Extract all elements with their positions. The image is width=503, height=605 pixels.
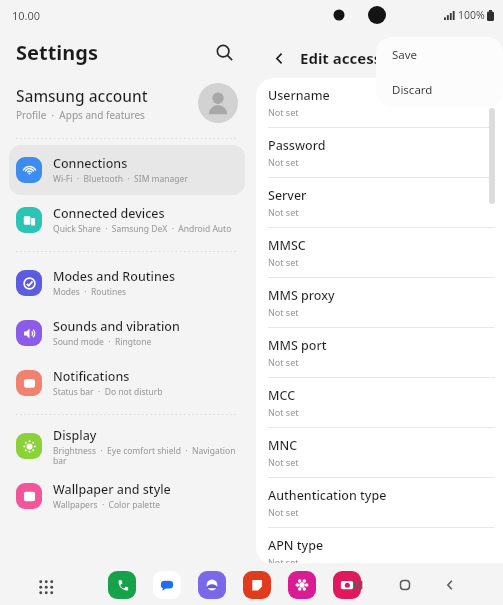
staticText: Display — [53, 427, 97, 444]
staticText: MMS port — [268, 337, 327, 354]
button[interactable]: Authentication type — [256, 478, 503, 527]
button[interactable]: Display — [9, 421, 245, 471]
staticText: Not set — [268, 456, 299, 468]
button[interactable]: Save — [376, 37, 503, 72]
staticText: Quick Share · Samsung DeX · Android Auto — [53, 223, 232, 235]
staticText: Not set — [268, 156, 299, 168]
staticText: Not set — [268, 256, 299, 268]
staticText: Wi-Fi · Bluetooth · SIM manager — [53, 173, 188, 185]
staticText: Not set — [268, 306, 299, 318]
staticText: Status bar · Do not disturb — [53, 386, 163, 398]
staticText: Wallpapers · Color palette — [53, 499, 161, 511]
button[interactable]: MESSAGES — [153, 571, 181, 599]
staticText: Not set — [268, 506, 299, 518]
staticText: Save — [392, 47, 418, 63]
button[interactable]: APN type — [256, 528, 503, 565]
button[interactable]: Wallpaper and style — [9, 471, 245, 521]
staticText: Modes and Routines — [53, 268, 175, 285]
staticText: Username — [268, 87, 330, 104]
staticText: Password — [268, 137, 326, 154]
button[interactable]: Discard — [376, 72, 503, 107]
button[interactable]: Back — [436, 571, 464, 599]
staticText: 10.00 — [12, 8, 41, 23]
staticText: Not set — [268, 356, 299, 368]
button[interactable]: Password — [256, 128, 503, 177]
staticText: Settings — [16, 39, 98, 66]
staticText: Not set — [268, 556, 299, 565]
button[interactable]: Connected devices — [9, 195, 245, 245]
button[interactable]: Server — [256, 178, 503, 227]
button[interactable]: Home — [391, 571, 419, 599]
staticText: Sounds and vibration — [53, 318, 180, 335]
button[interactable]: All apps — [32, 573, 60, 601]
button[interactable]: Sounds and vibration — [9, 308, 245, 358]
staticText: APN type — [268, 537, 324, 554]
button[interactable]: Modes and Routines — [9, 258, 245, 308]
staticText: Server — [268, 187, 307, 204]
button[interactable]: GALLERY — [288, 571, 316, 599]
staticText: Connected devices — [53, 205, 165, 222]
staticText: 100% — [458, 8, 485, 22]
button[interactable]: Notifications — [9, 358, 245, 408]
staticText: Notifications — [53, 368, 130, 385]
button[interactable]: BROWSER — [198, 571, 226, 599]
staticText: Discard — [392, 82, 433, 98]
staticText: Sound mode · Ringtone — [53, 336, 152, 348]
button[interactable]: Samsung account — [0, 74, 254, 132]
button[interactable]: NOTES — [243, 571, 271, 599]
button[interactable]: Search — [210, 38, 238, 66]
staticText: MMSC — [268, 237, 306, 254]
button[interactable]: Username — [256, 78, 503, 127]
button[interactable]: Connections — [9, 145, 245, 195]
staticText: Not set — [268, 106, 299, 118]
button[interactable]: MCC — [256, 378, 503, 427]
staticText: Edit access point name — [300, 48, 471, 68]
button[interactable]: Recents — [344, 571, 372, 599]
staticText: Not set — [268, 406, 299, 418]
button[interactable]: MMSC — [256, 228, 503, 277]
button[interactable]: MMS proxy — [256, 278, 503, 327]
button[interactable]: PHONE — [108, 571, 136, 599]
staticText: MNC — [268, 437, 298, 454]
button[interactable]: CAMERA — [333, 571, 361, 599]
staticText: MCC — [268, 387, 296, 404]
button[interactable]: MNC — [256, 428, 503, 477]
staticText: Authentication type — [268, 487, 387, 504]
staticText: Profile · Apps and features — [16, 108, 145, 122]
staticText: MMS proxy — [268, 287, 335, 304]
button[interactable]: MMS port — [256, 328, 503, 377]
staticText: Connections — [53, 155, 128, 172]
staticText: Wallpaper and style — [53, 481, 171, 498]
staticText: Samsung account — [16, 85, 148, 106]
staticText: Not set — [268, 206, 299, 218]
staticText: Modes · Routines — [53, 286, 127, 298]
staticText: Brightness · Eye comfort shield · Naviga… — [53, 445, 239, 466]
button[interactable]: Back — [266, 45, 292, 71]
